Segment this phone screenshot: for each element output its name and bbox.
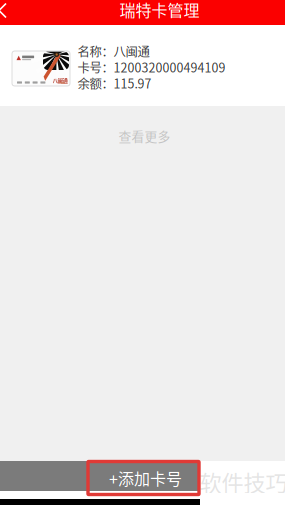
staticText: 名称：八闽通 [77,42,149,60]
button[interactable]: 查看更多 [0,116,285,158]
staticText: 卡号：1200320000494109 [77,58,225,76]
staticText: 查看更多 [118,127,170,145]
button[interactable]: 八闽通 [0,25,285,106]
button[interactable]: +添加卡号 [88,461,199,494]
staticText: 软件技巧 [199,465,285,497]
staticText: 瑞特卡管理 [119,0,199,21]
staticText: 八闽通 [52,76,67,84]
staticText: 余额：115.97 [77,74,151,92]
button[interactable]: Back [0,0,16,25]
staticText: +添加卡号 [109,466,182,490]
